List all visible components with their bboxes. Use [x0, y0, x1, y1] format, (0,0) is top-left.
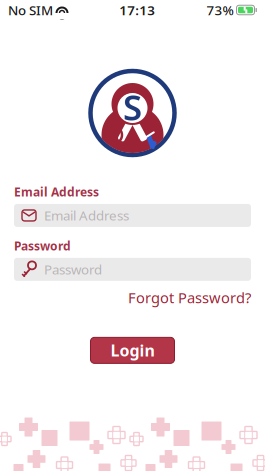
staticText: 17:13 [119, 1, 155, 19]
button[interactable]: Login [90, 337, 174, 363]
button[interactable]: Forgot Password? [128, 286, 251, 309]
staticText: Login [110, 340, 154, 361]
staticText: Forgot Password? [128, 288, 251, 307]
button[interactable]: Password [14, 258, 251, 281]
staticText: Password [14, 238, 71, 254]
staticText: Password [44, 260, 102, 278]
staticText: Email Address [14, 184, 99, 200]
staticText: S [123, 84, 142, 130]
staticText: Email Address [44, 207, 129, 224]
staticText: 73% [206, 1, 233, 19]
button[interactable]: Email Address [14, 204, 251, 227]
staticText: No SIM [8, 1, 53, 19]
